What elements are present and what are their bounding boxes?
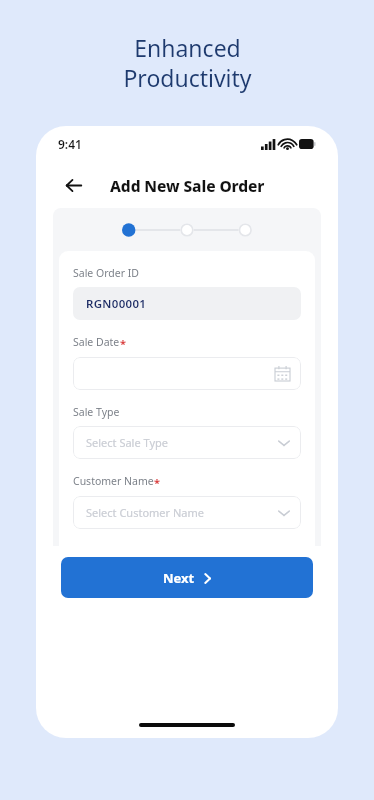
staticText: * [154, 475, 160, 490]
staticText: Select Customer Name [86, 505, 278, 520]
staticText: Next [163, 569, 195, 587]
staticText: RGN00001 [86, 296, 147, 312]
staticText: Sale Order ID [73, 266, 140, 280]
button[interactable]: RGN00001 [73, 287, 301, 320]
staticText: Add New Sale Order [110, 175, 265, 196]
button[interactable] [73, 357, 301, 390]
staticText: * [120, 336, 126, 351]
staticText: Sale Date [73, 335, 120, 349]
button[interactable]: Select Customer Name [73, 496, 301, 529]
staticText: Enhanced Productivity [123, 32, 252, 94]
button[interactable]: Next [61, 557, 313, 598]
button[interactable]: Back [60, 172, 86, 198]
staticText: Sale Type [73, 405, 120, 419]
staticText: 9:41 [58, 136, 82, 152]
staticText: Customer Name [73, 474, 154, 488]
staticText: Select Sale Type [86, 435, 278, 450]
button[interactable]: Select Sale Type [73, 426, 301, 459]
